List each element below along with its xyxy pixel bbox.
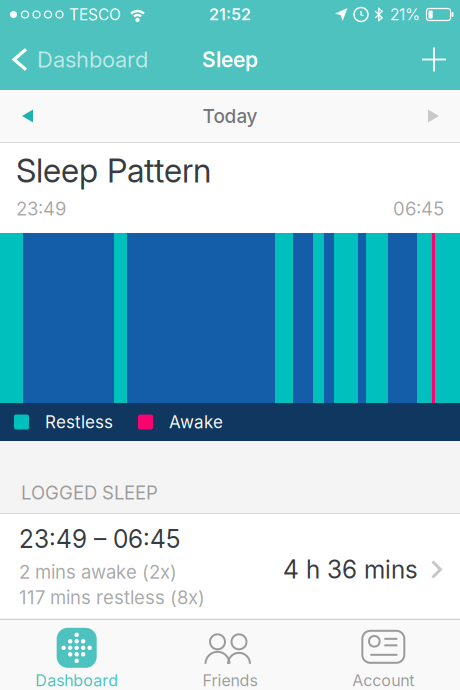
staticText: 2 mins awake (2x) bbox=[19, 561, 177, 583]
staticText: Restless bbox=[45, 412, 113, 432]
staticText: Awake bbox=[169, 412, 223, 432]
staticText: 4 h 36 mins bbox=[283, 555, 418, 584]
staticText: TESCO bbox=[69, 5, 121, 24]
staticText: Sleep bbox=[202, 47, 258, 72]
button[interactable]: Previous day bbox=[22, 109, 33, 122]
button[interactable]: Add sleep log bbox=[422, 47, 460, 71]
staticText: Dashboard bbox=[35, 671, 118, 690]
staticText: 23:49 – 06:45 bbox=[19, 524, 180, 554]
button[interactable]: Next day bbox=[428, 109, 439, 122]
staticText: Today bbox=[202, 104, 257, 127]
staticText: 21% bbox=[390, 5, 420, 24]
staticText: 23:49 bbox=[16, 198, 66, 220]
staticText: 117 mins restless (8x) bbox=[19, 586, 205, 609]
staticText: 06:45 bbox=[393, 198, 444, 220]
staticText: Sleep Pattern bbox=[16, 151, 211, 190]
staticText: 21:52 bbox=[209, 5, 251, 24]
staticText: Account bbox=[352, 671, 414, 690]
staticText: Dashboard bbox=[37, 46, 148, 73]
button[interactable]: Dashboard bbox=[0, 620, 153, 690]
button[interactable]: Account bbox=[307, 620, 460, 690]
staticText: LOGGED SLEEP bbox=[21, 482, 158, 504]
button[interactable]: Dashboard bbox=[0, 46, 148, 73]
staticText: Friends bbox=[202, 671, 257, 690]
button[interactable]: 23:49 – 06:45 bbox=[0, 514, 460, 619]
button[interactable]: Friends bbox=[153, 620, 307, 690]
